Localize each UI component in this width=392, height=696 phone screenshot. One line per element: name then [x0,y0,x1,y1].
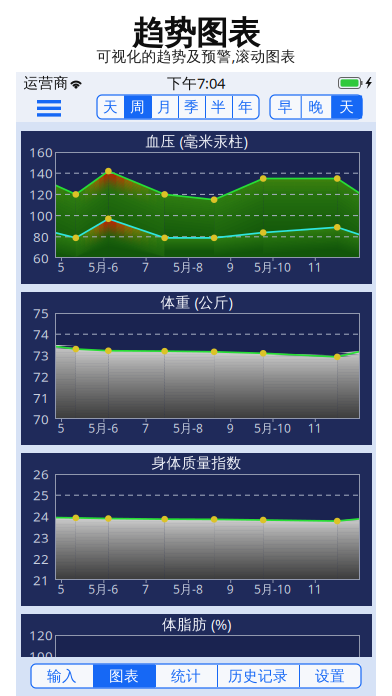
staticText: 24 [33,507,49,525]
button[interactable]: 年 [0,0,392,696]
staticText: 早 [278,98,293,116]
staticText: 100 [29,647,53,665]
staticText: 体脂肪 (%) [162,614,231,634]
staticText: 21 [33,571,49,589]
staticText: 运营商 [23,74,68,92]
staticText: 25 [33,486,49,504]
staticText: 5月-6 [88,420,118,436]
staticText: 设置 [315,667,345,685]
button[interactable]: 晚 [0,0,392,696]
staticText: 26 [33,465,49,483]
button[interactable]: 设置 [0,0,392,696]
staticText: 年 [238,98,253,116]
staticText: 图表 [109,667,139,685]
button[interactable]: 早 [0,0,392,696]
staticText: 周 [130,98,145,116]
staticText: 22 [33,550,49,568]
staticText: 可视化的趋势及预警,滚动图表 [96,46,295,66]
staticText: 9 [227,581,234,597]
staticText: 9 [227,420,234,436]
staticText: 5 [57,420,64,436]
staticText: 血压 (毫米汞柱) [145,131,247,151]
staticText: 11 [308,420,322,436]
staticText: 5月-8 [173,581,203,597]
button[interactable]: 周 [0,0,392,696]
staticText: 71 [33,389,49,407]
staticText: 75 [33,304,49,322]
staticText: 73 [33,346,49,364]
staticText: 7 [142,259,149,275]
button[interactable]: 天 [0,0,392,696]
staticText: 5月-10 [254,259,291,275]
staticText: 季 [184,98,199,116]
staticText: 80 [33,668,49,686]
staticText: 5月-10 [254,581,291,597]
staticText: 70 [33,410,49,428]
staticText: 身体质量指数 [151,454,241,472]
staticText: 7 [142,420,149,436]
staticText: 体重 (公斤) [160,292,232,312]
staticText: 60 [33,249,49,267]
button[interactable]: 季 [0,0,392,696]
staticText: 23 [33,529,49,546]
staticText: 5月-8 [173,259,203,275]
staticText: 7 [142,581,149,597]
staticText: 9 [227,259,234,275]
staticText: 输入 [47,667,77,685]
staticText: 历史记录 [228,667,288,685]
staticText: 5月-8 [173,420,203,436]
staticText: 下午7:04 [167,73,225,93]
staticText: 天 [103,98,118,116]
staticText: 5月-6 [88,259,118,275]
staticText: 11 [308,581,322,597]
staticText: 5 [57,581,64,597]
staticText: 160 [29,143,53,161]
button[interactable]: 统计 [0,0,392,696]
staticText: 120 [29,185,53,203]
staticText: 11 [308,259,322,275]
staticText: 5月-10 [254,420,291,436]
staticText: 140 [29,164,53,182]
staticText: 月 [157,98,172,116]
staticText: 72 [33,368,49,385]
staticText: 统计 [171,667,201,685]
button[interactable]: 天 [0,0,392,696]
button[interactable]: 历史记录 [0,0,392,696]
staticText: 半 [211,98,226,116]
staticText: 80 [33,228,49,246]
button[interactable]: 图表 [0,0,392,696]
button[interactable]: Menu [0,0,392,696]
button[interactable]: 输入 [0,0,392,696]
staticText: 74 [33,325,49,343]
button[interactable]: 半 [0,0,392,696]
staticText: 天 [339,98,354,116]
staticText: 趋势图表 [132,13,260,53]
staticText: 5月-6 [88,581,118,597]
staticText: 100 [29,207,53,224]
button[interactable]: 月 [0,0,392,696]
staticText: 5 [57,259,64,275]
staticText: 120 [29,626,53,644]
staticText: 晚 [309,98,324,116]
